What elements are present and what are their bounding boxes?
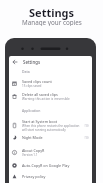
staticText: Settings bbox=[23, 59, 41, 65]
button[interactable]: Night Mode bbox=[9, 132, 92, 142]
staticText: Application bbox=[22, 108, 41, 113]
button[interactable]: Auto-CopyR on Google Play bbox=[9, 160, 92, 170]
staticText: Start at System boot bbox=[22, 119, 58, 124]
staticText: When this phone restarts the application… bbox=[22, 124, 80, 132]
staticText: Manage your copies bbox=[22, 18, 82, 26]
staticText: 15 clips saved bbox=[22, 84, 42, 88]
button: Application bbox=[22, 108, 41, 113]
staticText: Delete all saved clips bbox=[22, 92, 58, 97]
button: Data bbox=[22, 69, 30, 74]
staticText: Settings bbox=[29, 5, 75, 20]
staticText: Saved clips count bbox=[22, 79, 52, 84]
button[interactable]: Saved clips count bbox=[9, 77, 92, 90]
staticText: Night Mode bbox=[22, 135, 43, 140]
staticText: Auto-CopyR on Google Play bbox=[22, 163, 70, 168]
staticText: Data bbox=[22, 69, 30, 74]
button[interactable]: Back bbox=[9, 56, 20, 67]
staticText: Version 1.1 bbox=[22, 153, 38, 157]
button[interactable]: Start at System boot toggle bbox=[84, 124, 89, 127]
button[interactable]: Delete all saved clips bbox=[9, 90, 92, 103]
button[interactable]: Back bbox=[9, 56, 92, 67]
button[interactable]: Night Mode toggle bbox=[84, 136, 89, 139]
staticText: Warning: this action is irreversible bbox=[22, 97, 70, 101]
staticText: About CopyR bbox=[22, 148, 45, 153]
button[interactable]: Privacy policy bbox=[9, 171, 92, 181]
staticText: Privacy policy bbox=[22, 174, 46, 179]
button[interactable]: About CopyR bbox=[9, 146, 92, 159]
button[interactable]: Start at System boot bbox=[9, 117, 92, 133]
